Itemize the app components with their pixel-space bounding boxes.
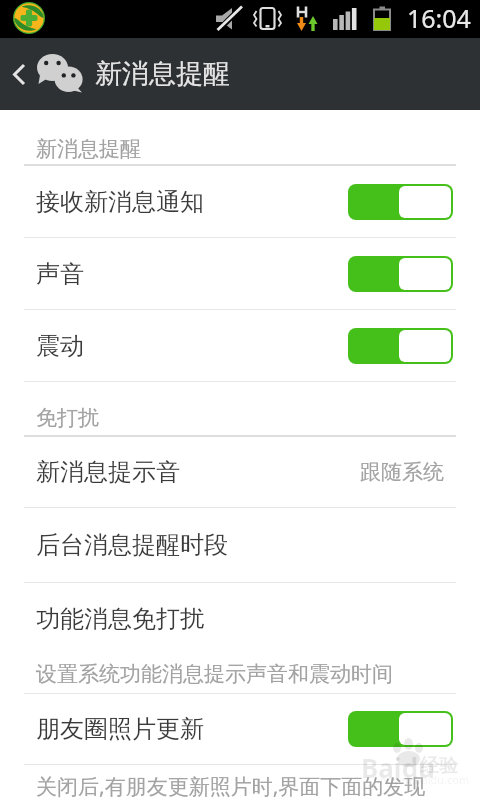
button[interactable]: Toggle — [348, 711, 453, 747]
staticText: 经验 — [420, 754, 458, 778]
staticText: 设置系统功能消息提示声音和震动时间 — [36, 661, 393, 687]
staticText: 新消息提示音 — [36, 457, 180, 487]
button[interactable]: 声音 — [0, 238, 480, 309]
staticText: 16:04 — [407, 1, 471, 35]
staticText: 新消息提醒 — [36, 136, 141, 162]
button[interactable]: 新消息提示音 — [0, 437, 480, 507]
button[interactable]: Toggle — [348, 256, 453, 292]
button[interactable]: 功能消息免打扰 — [0, 583, 480, 693]
staticText: 免打扰 — [36, 405, 99, 431]
staticText: Baidu — [361, 750, 435, 785]
staticText: 接收新消息通知 — [36, 187, 204, 217]
button[interactable]: Toggle — [348, 328, 453, 364]
staticText: 关闭后,有朋友更新照片时,界面下面的发现 — [36, 772, 426, 800]
button[interactable]: 后台消息提醒时段 — [0, 508, 480, 582]
button[interactable]: 朋友圈照片更新 — [0, 694, 480, 764]
button[interactable]: Back — [0, 38, 36, 110]
staticText: 后台消息提醒时段 — [36, 530, 228, 560]
button[interactable]: 震动 — [0, 310, 480, 381]
button[interactable]: 接收新消息通知 — [0, 166, 480, 237]
staticText: 朋友圈照片更新 — [36, 714, 204, 744]
staticText: 功能消息免打扰 — [36, 604, 204, 634]
staticText: 跟随系统 — [360, 459, 444, 485]
staticText: 震动 — [36, 331, 84, 361]
staticText: 新消息提醒 — [95, 57, 230, 91]
button[interactable]: Toggle — [348, 184, 453, 220]
staticText: jingyan.baidu.com — [374, 772, 470, 787]
staticText: 声音 — [36, 259, 84, 289]
